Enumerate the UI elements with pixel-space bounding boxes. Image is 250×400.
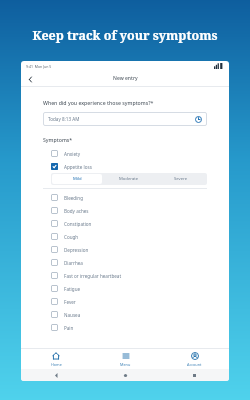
staticText: Fever — [64, 299, 76, 305]
button[interactable]: Menu — [91, 349, 160, 369]
staticText: Account — [187, 362, 202, 367]
button[interactable]: Constipation — [43, 217, 207, 230]
button[interactable]: Today 8:13 AM — [43, 112, 207, 126]
button[interactable]: Fatigue — [43, 282, 207, 295]
button[interactable]: Anxiety — [43, 147, 207, 160]
staticText: Cough — [64, 234, 79, 240]
staticText: Fatigue — [64, 286, 81, 292]
button[interactable]: Pain — [43, 321, 207, 334]
staticText: Menu — [120, 362, 131, 367]
button[interactable]: Back — [24, 73, 36, 85]
staticText: Mild — [73, 176, 82, 182]
button[interactable]: Mild — [52, 174, 102, 184]
button[interactable]: Fast or irregular heartbeat — [43, 269, 207, 282]
staticText: Symptoms* — [43, 136, 73, 143]
staticText: Severe — [174, 176, 188, 182]
button[interactable]: Moderate — [104, 174, 154, 184]
staticText: 9:41 Mon Jun 5 — [26, 64, 52, 69]
staticText: Constipation — [64, 221, 92, 227]
button[interactable]: Home — [91, 369, 160, 381]
staticText: Today 8:13 AM — [48, 116, 80, 122]
staticText: New entry — [113, 75, 138, 82]
staticText: Anxiety — [64, 151, 80, 157]
button[interactable]: Appetite loss — [43, 160, 207, 173]
button[interactable]: Bleeding — [43, 191, 207, 204]
button[interactable]: Recents — [160, 369, 229, 381]
staticText: Moderate — [119, 176, 139, 182]
staticText: Fast or irregular heartbeat — [64, 273, 122, 279]
button[interactable]: Cough — [43, 230, 207, 243]
button[interactable]: Home — [21, 349, 91, 369]
staticText: Bleeding — [64, 195, 84, 201]
button[interactable]: Back — [21, 369, 91, 381]
button[interactable]: Diarrhea — [43, 256, 207, 269]
button[interactable]: Depression — [43, 243, 207, 256]
staticText: Diarrhea — [64, 260, 83, 266]
button[interactable]: Fever — [43, 295, 207, 308]
staticText: Pain — [64, 325, 74, 331]
button[interactable]: Account — [160, 349, 229, 369]
staticText: Appetite loss — [64, 164, 92, 170]
staticText: Nausea — [64, 312, 81, 318]
button[interactable]: Body aches — [43, 204, 207, 217]
button[interactable]: Severe — [156, 174, 206, 184]
staticText: Depression — [64, 247, 89, 253]
staticText: Body aches — [64, 208, 89, 214]
staticText: When did you experience those symptoms?* — [43, 99, 154, 106]
button[interactable]: Nausea — [43, 308, 207, 321]
staticText: Keep track of your symptoms — [0, 27, 250, 44]
staticText: Home — [51, 362, 62, 367]
